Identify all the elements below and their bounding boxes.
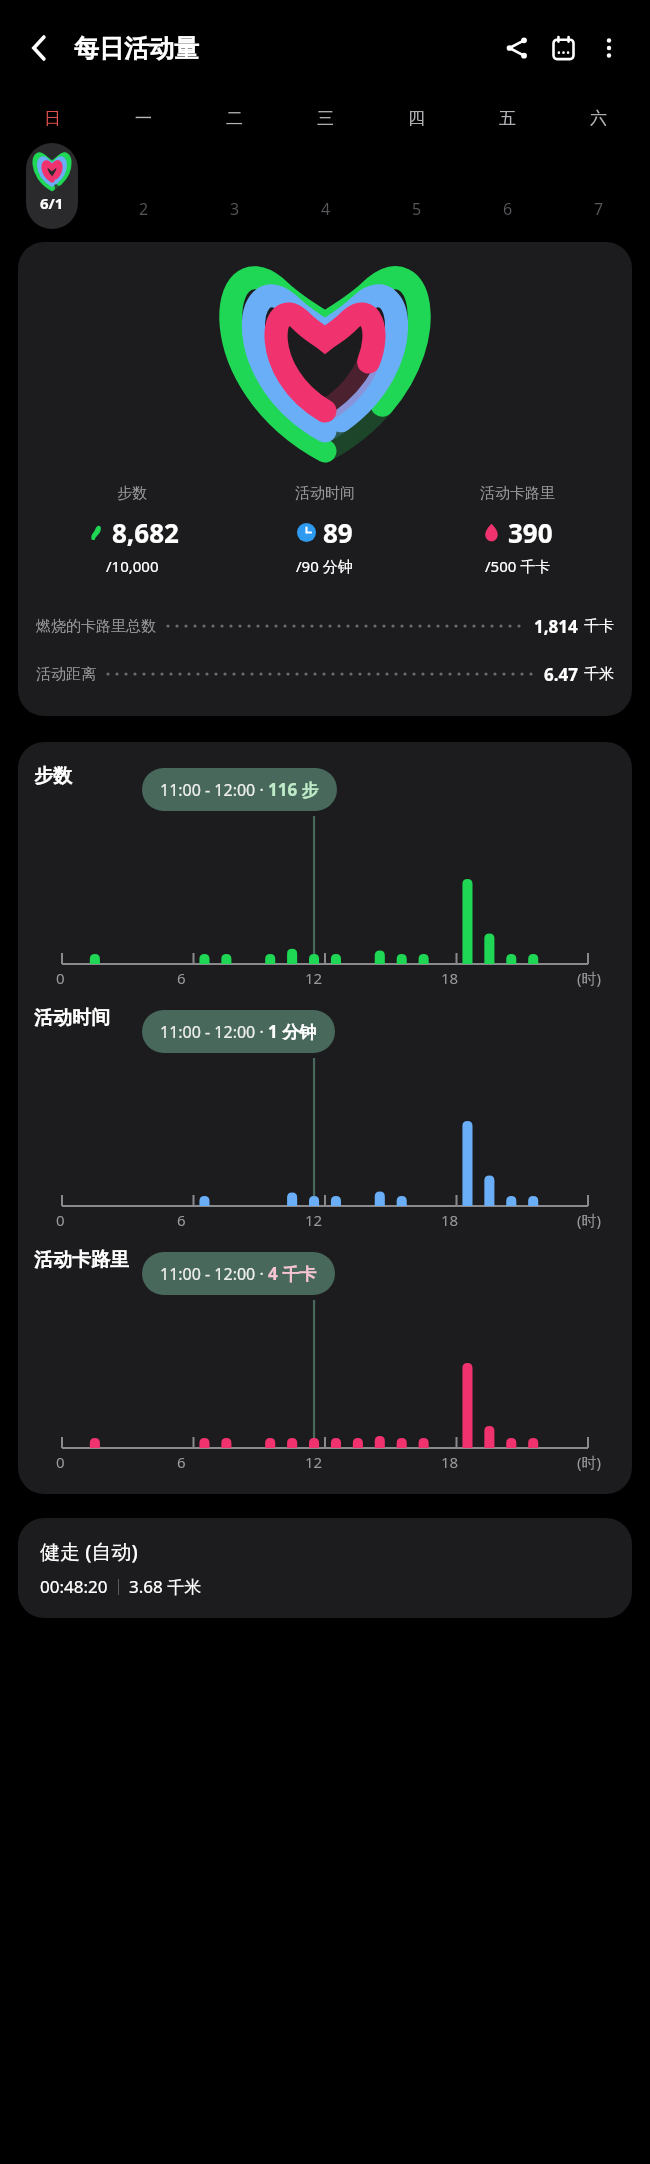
button[interactable]: 11:00 - 12:00 · <box>142 1252 335 1295</box>
staticText: 390 <box>508 515 553 550</box>
button[interactable]: 6 <box>462 140 553 232</box>
staticText: 日 <box>44 108 61 129</box>
button[interactable]: 步数 <box>18 242 632 716</box>
staticText: 0 <box>56 968 65 988</box>
staticText: 116 步 <box>268 778 319 801</box>
staticText: 五 <box>499 108 516 129</box>
staticText: (时) <box>577 968 602 988</box>
staticText: 千卡 <box>584 617 614 636</box>
staticText: (时) <box>577 1452 602 1472</box>
staticText: 6 <box>177 1452 186 1472</box>
staticText: 6 <box>503 198 513 220</box>
staticText: 5 <box>412 198 422 220</box>
staticText: /500 千卡 <box>485 556 551 576</box>
button[interactable]: 11:00 - 12:00 · <box>142 1010 335 1053</box>
staticText: 每日活动量 <box>74 33 199 64</box>
staticText: 千米 <box>584 665 614 684</box>
staticText: 3.68 千米 <box>129 1575 202 1598</box>
button[interactable]: 4 <box>280 140 371 232</box>
staticText: 0 <box>56 1452 65 1472</box>
staticText: 6/1 <box>40 193 64 213</box>
staticText: 活动时间 <box>34 1006 110 1030</box>
staticText: 步数 <box>34 764 72 788</box>
staticText: 12 <box>305 1210 323 1230</box>
staticText: 三 <box>317 108 334 129</box>
staticText: 11:00 - 12:00 · <box>160 1021 268 1043</box>
staticText: 六 <box>590 108 607 129</box>
button[interactable]: 3 <box>189 140 280 232</box>
staticText: 3 <box>230 198 240 220</box>
staticText: 4 千卡 <box>268 1262 317 1285</box>
button[interactable]: Share <box>494 25 540 71</box>
staticText: 活动卡路里 <box>480 484 555 503</box>
button[interactable]: 2 <box>98 140 189 232</box>
button[interactable]: Calendar <box>540 25 586 71</box>
staticText: 11:00 - 12:00 · <box>160 1263 268 1285</box>
staticText: 2 <box>139 198 149 220</box>
staticText: 18 <box>441 1210 459 1230</box>
staticText: 二 <box>226 108 243 129</box>
staticText: 健走 (自动) <box>40 1538 138 1565</box>
staticText: 1,814 <box>534 615 578 638</box>
staticText: 0 <box>56 1210 65 1230</box>
staticText: 7 <box>594 198 604 220</box>
button[interactable]: 健走 (自动) <box>18 1518 632 1618</box>
staticText: 步数 <box>117 484 147 503</box>
staticText: 12 <box>305 968 323 988</box>
staticText: 6 <box>177 968 186 988</box>
button[interactable]: 11:00 - 12:00 · <box>142 768 337 811</box>
staticText: 活动卡路里 <box>34 1248 129 1272</box>
staticText: 4 <box>321 198 331 220</box>
staticText: 一 <box>135 108 152 129</box>
staticText: 四 <box>408 108 425 129</box>
staticText: 6 <box>177 1210 186 1230</box>
staticText: 活动距离 <box>36 665 96 684</box>
staticText: /90 分钟 <box>296 556 353 576</box>
staticText: 1 分钟 <box>268 1020 317 1043</box>
staticText: 11:00 - 12:00 · <box>160 779 268 801</box>
staticText: 18 <box>441 1452 459 1472</box>
button[interactable]: 5 <box>371 140 462 232</box>
staticText: 12 <box>305 1452 323 1472</box>
staticText: 89 <box>323 515 353 550</box>
staticText: (时) <box>577 1210 602 1230</box>
button[interactable]: Back <box>18 26 62 70</box>
staticText: 18 <box>441 968 459 988</box>
button[interactable]: 7 <box>553 140 644 232</box>
button[interactable]: 6/1 <box>26 143 78 229</box>
staticText: 燃烧的卡路里总数 <box>36 617 156 636</box>
staticText: 8,682 <box>112 515 179 550</box>
staticText: /10,000 <box>106 556 159 576</box>
staticText: 活动时间 <box>295 484 355 503</box>
button[interactable]: More options <box>586 25 632 71</box>
staticText: 6.47 <box>544 663 578 686</box>
staticText: 00:48:20 <box>40 1575 108 1598</box>
